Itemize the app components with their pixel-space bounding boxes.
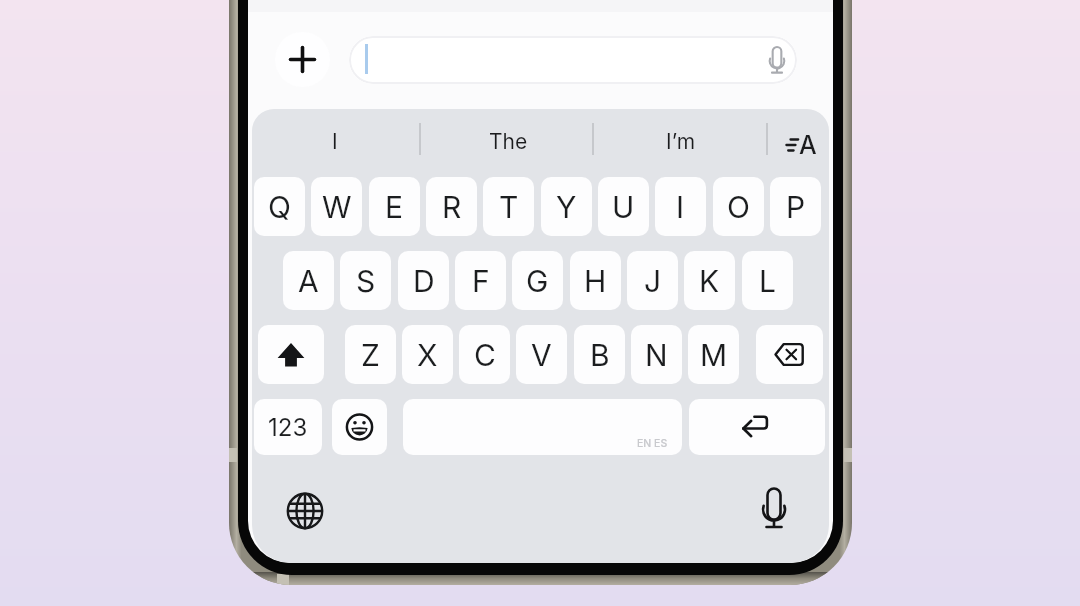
staticText: I — [332, 129, 338, 154]
button[interactable]: M — [688, 325, 739, 384]
button[interactable]: B — [574, 325, 625, 384]
button[interactable]: P — [770, 177, 821, 236]
staticText: 123 — [268, 413, 308, 442]
button[interactable]: Z — [345, 325, 396, 384]
button[interactable]: E — [369, 177, 420, 236]
staticText: G — [526, 263, 549, 299]
button[interactable]: The — [448, 122, 568, 160]
button[interactable]: O — [713, 177, 764, 236]
staticText: K — [699, 263, 720, 299]
staticText: U — [612, 189, 635, 225]
staticText: I’m — [666, 129, 696, 154]
staticText: N — [645, 337, 668, 373]
button[interactable]: I’m — [621, 122, 741, 160]
button[interactable]: Q — [254, 177, 305, 236]
button[interactable]: A — [772, 122, 824, 160]
button[interactable]: R — [426, 177, 477, 236]
button[interactable]: X — [402, 325, 453, 384]
button[interactable]: A — [283, 251, 334, 310]
staticText: D — [413, 263, 435, 299]
staticText: T — [499, 189, 519, 225]
staticText: W — [322, 189, 352, 225]
button[interactable] — [258, 325, 324, 384]
button[interactable]: V — [516, 325, 567, 384]
staticText: E — [385, 189, 404, 225]
button[interactable] — [749, 483, 799, 533]
button[interactable]: S — [340, 251, 391, 310]
button[interactable] — [280, 486, 330, 536]
staticText: M — [700, 337, 728, 373]
staticText: R — [442, 189, 462, 225]
button[interactable]: D — [398, 251, 449, 310]
button[interactable]: U — [598, 177, 649, 236]
staticText: C — [474, 337, 496, 373]
staticText: Z — [361, 337, 380, 373]
staticText: B — [590, 337, 610, 373]
button[interactable]: T — [483, 177, 534, 236]
button[interactable]: 123 — [254, 399, 322, 455]
button[interactable]: L — [742, 251, 793, 310]
button[interactable]: J — [627, 251, 678, 310]
staticText: EN ES — [637, 437, 668, 450]
staticText: Y — [556, 189, 577, 225]
button[interactable]: N — [631, 325, 682, 384]
button[interactable] — [689, 399, 825, 455]
button[interactable] — [332, 399, 387, 455]
button[interactable]: K — [684, 251, 735, 310]
staticText: F — [472, 263, 490, 299]
button[interactable]: H — [570, 251, 621, 310]
button[interactable]: I — [295, 122, 375, 160]
button[interactable]: I — [655, 177, 706, 236]
button[interactable] — [756, 325, 823, 384]
button[interactable]: EN ES — [403, 399, 682, 455]
staticText: A — [298, 263, 319, 299]
staticText: P — [786, 189, 806, 225]
button[interactable]: C — [459, 325, 510, 384]
button[interactable]: Y — [541, 177, 592, 236]
staticText: Q — [268, 189, 291, 225]
staticText: S — [356, 263, 376, 299]
staticText: The — [489, 129, 528, 154]
staticText: A — [799, 130, 817, 160]
staticText: O — [727, 189, 750, 225]
button[interactable]: W — [311, 177, 362, 236]
button[interactable] — [349, 36, 797, 84]
staticText: I — [676, 189, 685, 225]
staticText: V — [531, 337, 552, 373]
staticText: H — [584, 263, 607, 299]
staticText: X — [417, 337, 438, 373]
button[interactable]: G — [512, 251, 563, 310]
button[interactable] — [275, 32, 330, 87]
staticText: L — [759, 263, 776, 299]
staticText: J — [644, 263, 662, 299]
button[interactable]: F — [455, 251, 506, 310]
